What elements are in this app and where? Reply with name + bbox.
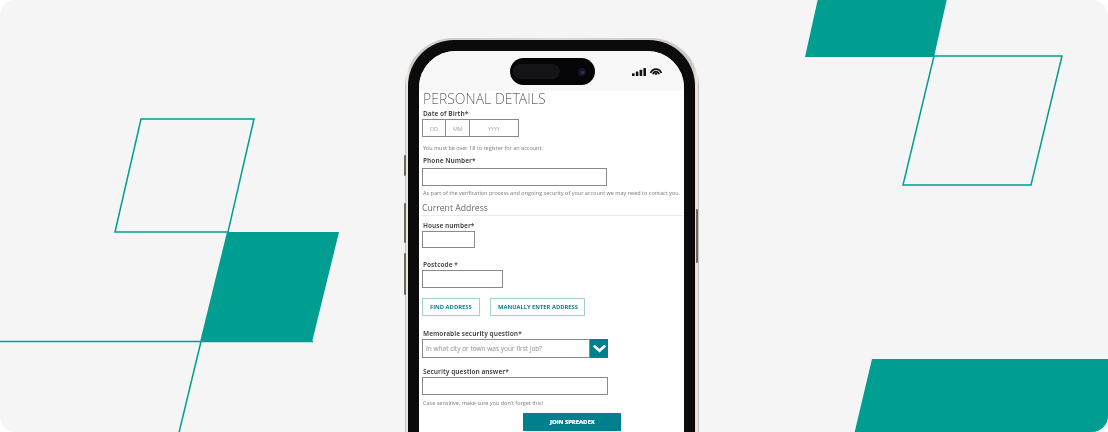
button[interactable]: JOIN SPREADEX: [523, 413, 621, 431]
staticText: As part of the verification process and …: [423, 189, 680, 196]
button[interactable]: FIND ADDRESS: [422, 298, 480, 316]
staticText: Postcode *: [423, 260, 458, 269]
staticText: You must be over 18 to register for an a…: [423, 144, 543, 151]
button[interactable]: [422, 231, 475, 248]
staticText: House number*: [423, 221, 475, 230]
staticText: Case sensitive, make sure you don't forg…: [423, 399, 543, 406]
staticText: JOIN SPREADEX: [550, 418, 595, 426]
button[interactable]: [422, 270, 503, 288]
staticText: Security question answer*: [423, 367, 509, 376]
staticText: YYYY: [488, 125, 501, 132]
staticText: In what city or town was your first job?: [426, 344, 543, 353]
staticText: MM: [453, 125, 463, 132]
staticText: FIND ADDRESS: [430, 303, 472, 311]
button[interactable]: DD: [422, 119, 519, 137]
staticText: Memorable security question*: [423, 329, 522, 338]
staticText: DD: [430, 125, 438, 132]
button[interactable]: In what city or town was your first job?: [422, 339, 608, 358]
staticText: MANUALLY ENTER ADDRESS: [498, 303, 578, 311]
button[interactable]: [422, 168, 607, 186]
button[interactable]: [422, 377, 608, 395]
staticText: PERSONAL DETAILS: [423, 89, 546, 108]
button[interactable]: MANUALLY ENTER ADDRESS: [490, 298, 585, 316]
staticText: Current Address: [422, 202, 488, 214]
staticText: Phone Number*: [423, 156, 476, 165]
staticText: Date of Birth*: [423, 109, 469, 118]
